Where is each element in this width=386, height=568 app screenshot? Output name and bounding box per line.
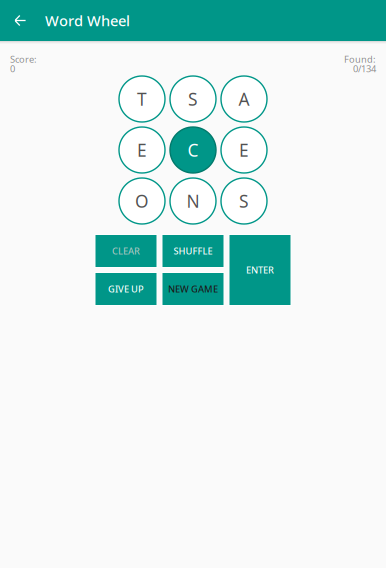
staticText: S — [239, 189, 249, 212]
button[interactable]: O — [119, 178, 165, 224]
staticText: S — [188, 87, 198, 110]
staticText: Score: — [10, 53, 37, 65]
staticText: E — [239, 138, 249, 161]
staticText: A — [238, 87, 249, 110]
staticText: GIVE UP — [108, 283, 144, 295]
button[interactable]: T — [119, 76, 165, 122]
staticText: Found: — [344, 53, 376, 65]
staticText: N — [186, 189, 199, 212]
button[interactable]: NEW GAME — [161, 272, 224, 306]
staticText: 0/134 — [353, 62, 376, 75]
staticText: CLEAR — [112, 245, 140, 257]
button[interactable]: A — [221, 76, 267, 122]
button[interactable]: S — [221, 178, 267, 224]
staticText: NEW GAME — [168, 283, 218, 295]
button[interactable]: E — [119, 127, 165, 173]
staticText: 0 — [10, 62, 15, 75]
staticText: Word Wheel — [45, 11, 130, 30]
button[interactable]: C — [170, 127, 216, 173]
staticText: O — [135, 189, 149, 212]
button[interactable]: S — [170, 76, 216, 122]
staticText: T — [137, 87, 147, 110]
button[interactable]: CLEAR — [94, 234, 157, 268]
staticText: C — [187, 138, 198, 161]
button[interactable]: SHUFFLE — [161, 234, 224, 268]
button[interactable]: Back — [0, 0, 40, 41]
staticText: E — [137, 138, 147, 161]
staticText: ENTER — [246, 264, 274, 276]
button[interactable]: N — [170, 178, 216, 224]
button[interactable]: GIVE UP — [94, 272, 157, 306]
button[interactable]: E — [221, 127, 267, 173]
button[interactable]: ENTER — [228, 234, 291, 306]
staticText: SHUFFLE — [173, 245, 212, 257]
